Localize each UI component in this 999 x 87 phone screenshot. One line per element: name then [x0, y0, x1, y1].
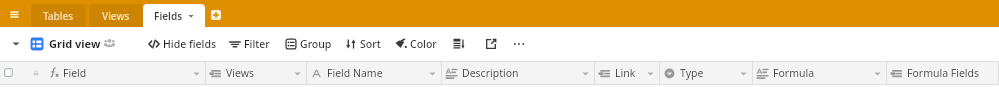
button[interactable]: Views — [206, 61, 307, 85]
button[interactable]: Field Name — [307, 61, 442, 85]
staticText: Fields — [154, 9, 183, 23]
button[interactable]: Formula — [753, 61, 887, 85]
staticText: Description — [462, 66, 519, 80]
staticText: Formula — [773, 66, 815, 80]
staticText: Filter — [244, 37, 270, 51]
button[interactable]: Filter — [228, 34, 271, 53]
button[interactable]: Collapse sidebar — [9, 36, 23, 50]
button[interactable]: Formula Fields — [887, 61, 999, 85]
button[interactable]: Add — [211, 10, 221, 20]
staticText: Formula Fields — [907, 66, 980, 80]
staticText: Views — [102, 9, 130, 23]
button[interactable]: Views — [89, 4, 143, 27]
button[interactable]: Description — [442, 61, 595, 85]
button[interactable]: Grid view — [29, 33, 102, 54]
button[interactable]: Collaborators — [102, 36, 116, 50]
button[interactable]: Hide fields — [147, 34, 218, 53]
button[interactable]: Select all rows — [0, 61, 206, 85]
button[interactable]: Tables — [31, 4, 86, 27]
staticText: Type — [680, 66, 704, 80]
staticText: Hide fields — [163, 37, 217, 51]
button[interactable]: Group — [284, 34, 333, 53]
button[interactable]: Fields — [143, 4, 205, 27]
button[interactable]: Share view — [481, 34, 500, 53]
staticText: Link — [615, 66, 636, 80]
button[interactable]: Type — [660, 61, 753, 85]
button[interactable]: Link — [595, 61, 660, 85]
staticText: Field — [63, 66, 87, 80]
button[interactable]: Sort — [344, 34, 382, 53]
button[interactable]: Row height — [449, 34, 468, 53]
button[interactable]: More options — [509, 34, 528, 53]
staticText: Views — [226, 66, 255, 80]
staticText: Field Name — [327, 66, 383, 80]
staticText: Tables — [43, 9, 74, 23]
staticText: Sort — [360, 37, 381, 51]
staticText: Color — [410, 37, 437, 51]
button[interactable]: Select all rows — [4, 68, 13, 77]
button[interactable]: Color — [394, 34, 438, 53]
staticText: Group — [300, 37, 332, 51]
button[interactable]: Menu — [2, 5, 26, 23]
staticText: Grid view — [49, 36, 101, 51]
